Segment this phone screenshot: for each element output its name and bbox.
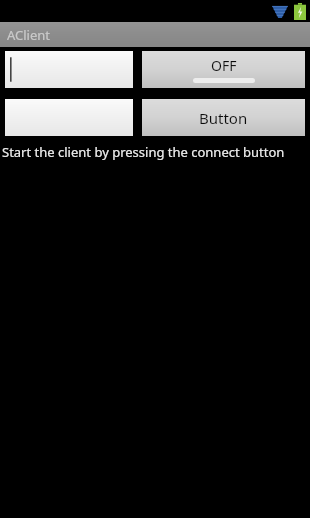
staticText: AClient xyxy=(7,26,51,44)
button[interactable] xyxy=(5,51,133,88)
other: Battery charging xyxy=(294,3,306,20)
button[interactable] xyxy=(5,99,133,136)
button[interactable]: OFF xyxy=(142,51,305,88)
button[interactable]: Button xyxy=(142,99,305,136)
staticText: Button xyxy=(199,108,248,128)
staticText: OFF xyxy=(211,56,237,75)
other: Network xyxy=(271,4,289,20)
staticText: Start the client by pressing the connect… xyxy=(2,143,285,161)
